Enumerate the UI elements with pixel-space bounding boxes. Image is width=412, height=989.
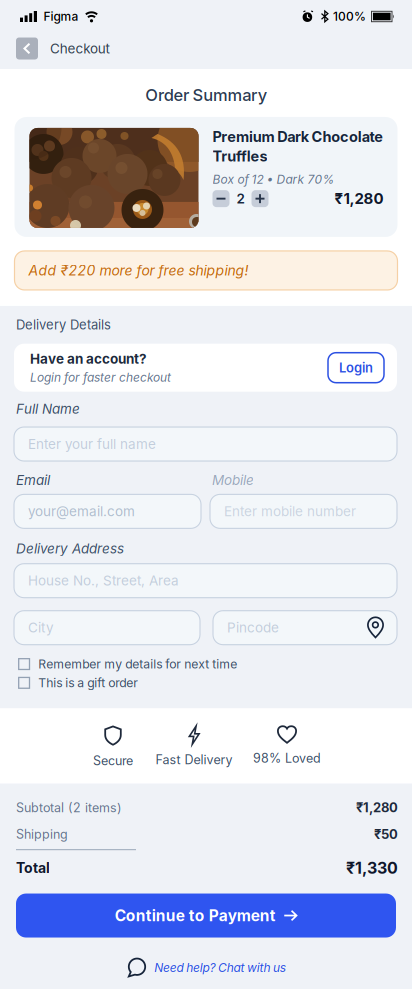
staticText: Figma [43, 9, 78, 24]
staticText: Fast Delivery [155, 752, 232, 767]
button[interactable]: City [14, 611, 200, 645]
staticText: Login for faster checkout [30, 370, 171, 385]
staticText: Truffles [212, 147, 267, 165]
staticText: Need help? Chat with us [154, 960, 286, 975]
button[interactable]: Continue to Payment [16, 893, 396, 937]
staticText: Delivery Address [16, 540, 124, 557]
staticText: ₹1,330 [346, 858, 398, 878]
staticText: Email [16, 472, 50, 488]
staticText: Shipping [16, 827, 68, 842]
staticText: City [28, 619, 54, 636]
staticText: This is a gift order [38, 675, 138, 690]
staticText: Secure [93, 753, 133, 768]
button[interactable]: Remember my details for next time [18, 657, 237, 671]
button[interactable]: Back [16, 37, 38, 59]
button[interactable]: House No., Street, Area [14, 564, 397, 598]
staticText: Premium Dark Chocolate [212, 128, 383, 145]
staticText: Checkout [50, 40, 110, 57]
staticText: Mobile [212, 472, 254, 488]
staticText: Subtotal (2 items) [16, 800, 122, 815]
staticText: Add ₹220 more for free shipping! [28, 262, 248, 279]
staticText: Login [339, 360, 373, 375]
staticText: 100% [333, 9, 366, 24]
staticText: ₹1,280 [334, 190, 383, 208]
staticText: ₹50 [374, 826, 398, 842]
staticText: House No., Street, Area [28, 572, 179, 589]
button[interactable]: Login [328, 353, 384, 383]
staticText: Order Summary [145, 85, 267, 105]
button[interactable]: This is a gift order [18, 675, 138, 690]
staticText: 2 [236, 190, 244, 207]
staticText: Total [16, 859, 50, 876]
button[interactable]: Decrease quantity [212, 190, 229, 207]
staticText: ₹1,280 [356, 800, 398, 815]
button[interactable]: Pincode [213, 611, 397, 645]
staticText: Enter your full name [28, 436, 156, 452]
button[interactable]: Increase quantity [251, 190, 268, 207]
staticText: Box of 12 • Dark 70% [212, 172, 334, 187]
button[interactable]: Need help? Chat with us [126, 957, 286, 977]
staticText: Continue to Payment [115, 906, 276, 925]
staticText: your@email.com [28, 503, 135, 519]
staticText: Full Name [16, 401, 80, 417]
button[interactable]: Enter mobile number [210, 494, 397, 528]
staticText: Delivery Details [16, 317, 111, 333]
staticText: Enter mobile number [224, 503, 356, 519]
staticText: Remember my details for next time [38, 657, 237, 671]
button[interactable]: your@email.com [14, 494, 201, 528]
staticText: 98% Loved [253, 751, 321, 766]
staticText: Have an account? [30, 351, 147, 367]
button[interactable]: Enter your full name [14, 427, 397, 461]
staticText: Pincode [227, 619, 279, 636]
